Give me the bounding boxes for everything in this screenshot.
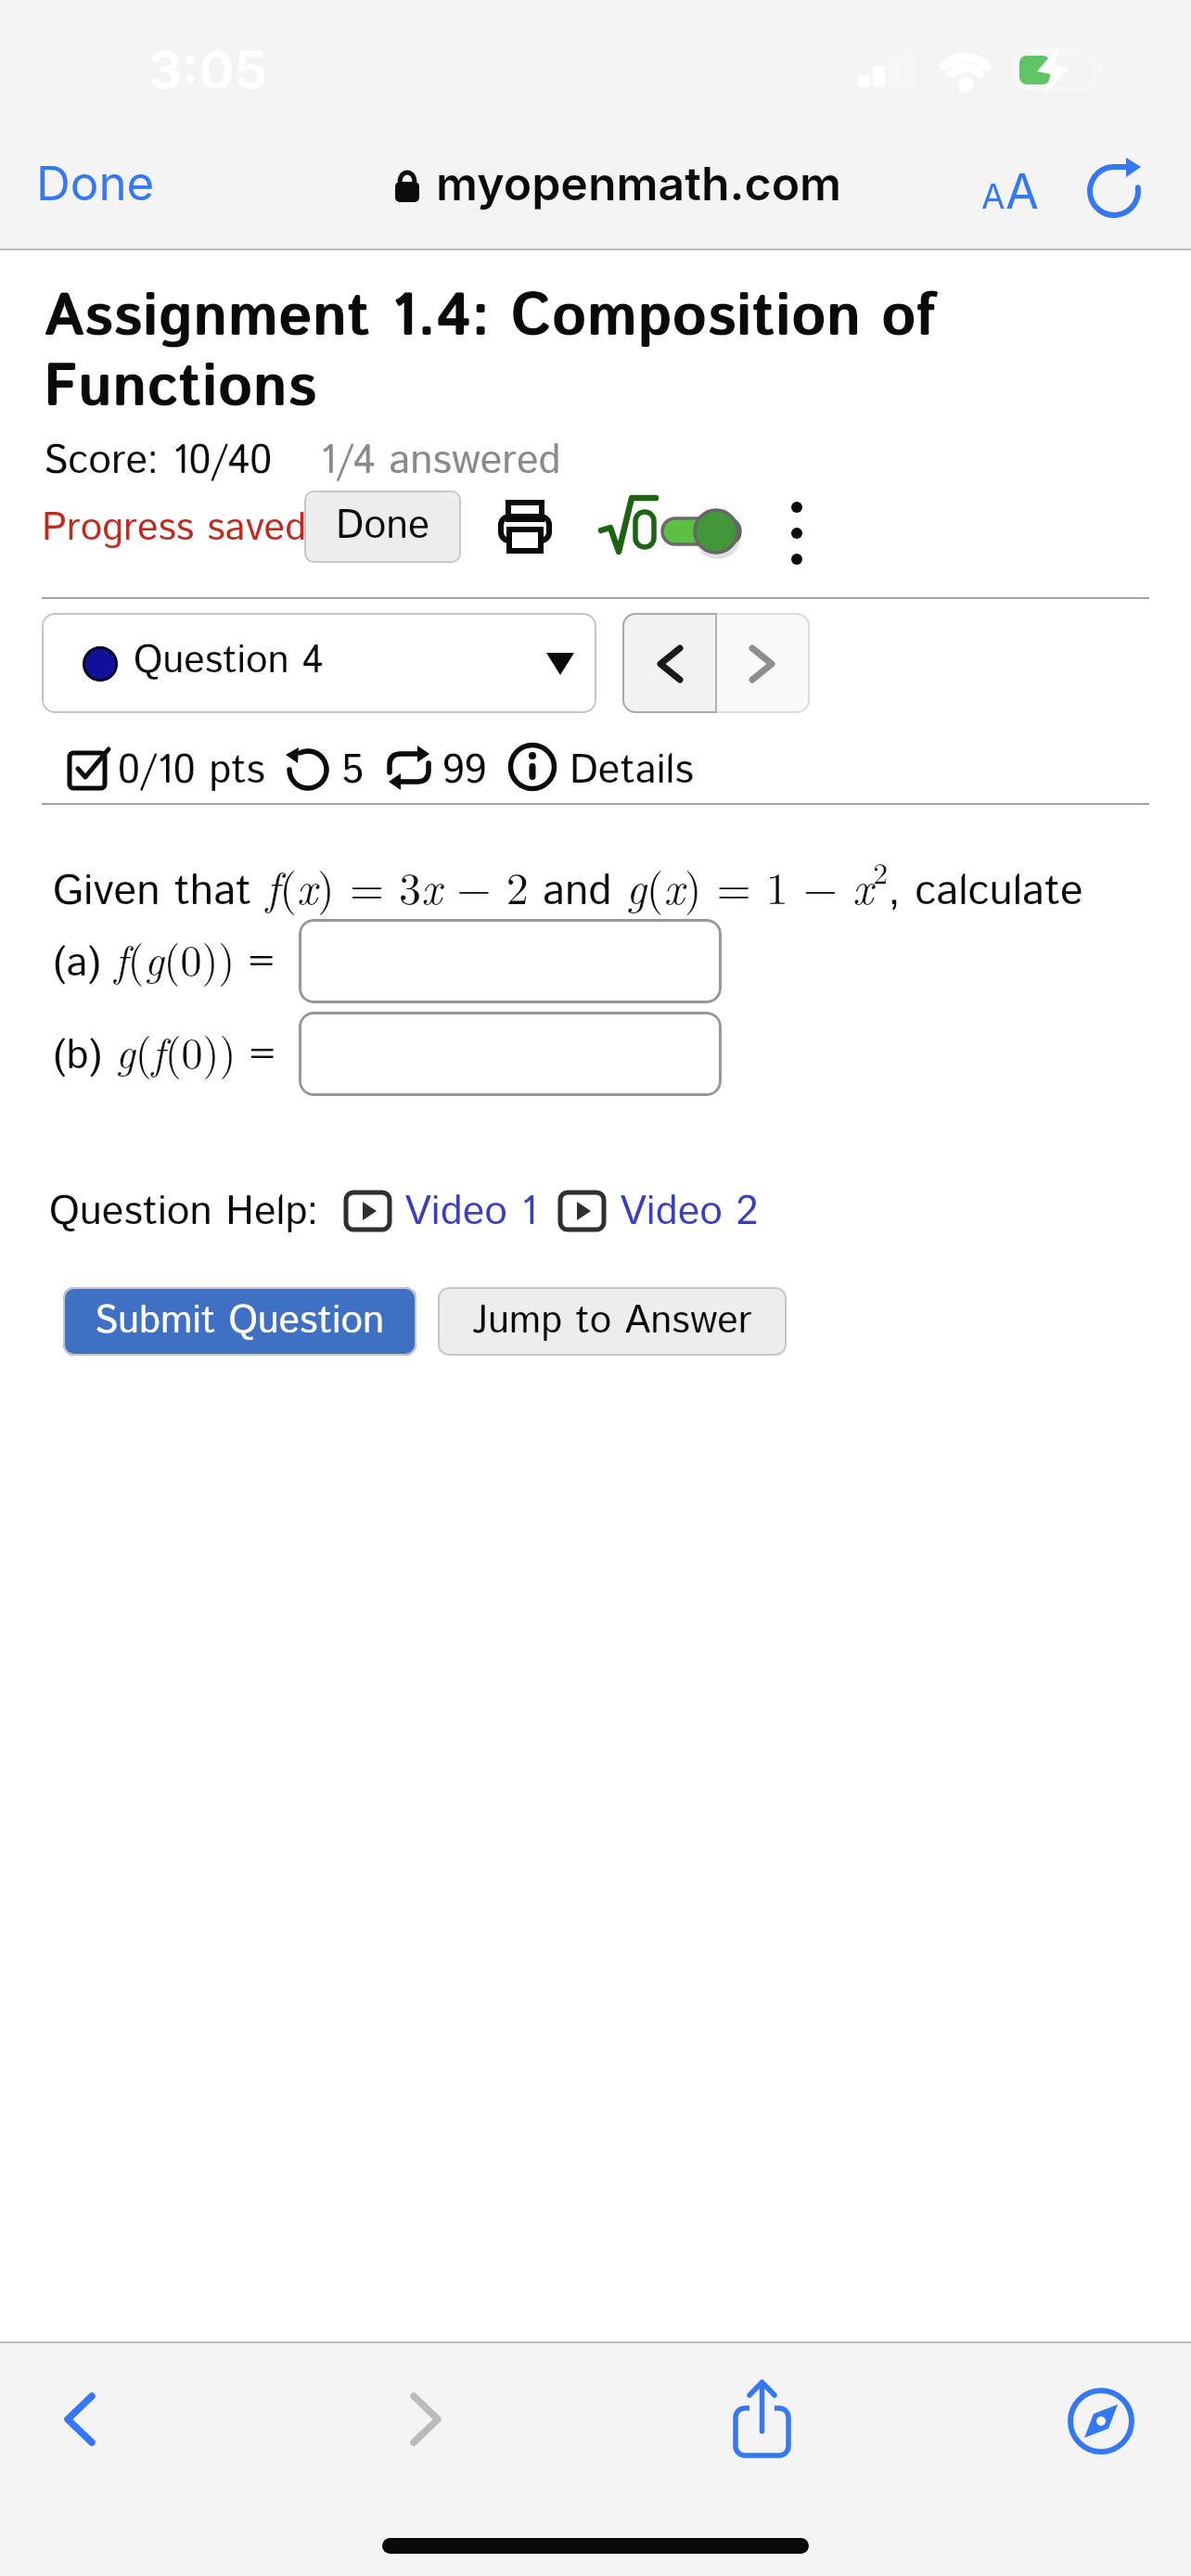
button[interactable] <box>59 2392 100 2446</box>
button[interactable]: Jump to Answer <box>438 1287 787 1356</box>
button[interactable] <box>729 2380 796 2460</box>
staticText: Given that f(x) = 3x − 2 and g(x) = 1 − … <box>53 850 1083 923</box>
staticText: 0/10 pts <box>118 742 265 800</box>
staticText: Jump to Answer <box>472 1294 752 1349</box>
button[interactable] <box>1067 2387 1135 2455</box>
staticText: Video 2 <box>620 1183 759 1228</box>
staticText: 5 <box>341 742 364 800</box>
staticText: (a) f(g(0)) = <box>53 927 275 993</box>
button[interactable] <box>716 613 810 713</box>
staticText: Assignment 1.4: Composition of <box>44 275 937 361</box>
staticText: Done <box>36 155 155 212</box>
button[interactable] <box>788 501 806 566</box>
staticText: Question 4 <box>134 633 324 689</box>
button[interactable] <box>405 2392 446 2446</box>
button[interactable] <box>598 487 747 561</box>
staticText: Details <box>570 742 694 800</box>
button[interactable]: Video 1 <box>346 1192 573 1236</box>
staticText: Video 1 <box>404 1183 538 1228</box>
button[interactable]: Submit Question <box>63 1287 416 1356</box>
staticText: Question Help: <box>49 1183 319 1242</box>
button[interactable]: Done <box>36 155 155 212</box>
staticText: Functions <box>44 346 317 431</box>
staticText: (b) g(f(0)) = <box>53 1020 275 1086</box>
button[interactable] <box>622 613 716 713</box>
button[interactable] <box>299 1012 722 1096</box>
staticText: Submit Question <box>95 1294 385 1349</box>
button[interactable] <box>499 501 551 551</box>
button[interactable] <box>1089 158 1146 217</box>
staticText: Score: 10/40 <box>44 432 273 491</box>
staticText: 99 <box>442 742 487 800</box>
staticText: myopenmath.com <box>436 156 842 211</box>
staticText: 1/4 answered <box>320 432 561 491</box>
button[interactable]: Question 4 <box>42 613 596 713</box>
staticText: Progress saved <box>42 501 307 556</box>
staticText: A <box>1005 162 1039 221</box>
button[interactable]: Done <box>304 491 461 563</box>
staticText: 3:05 <box>148 38 267 102</box>
staticText: A <box>981 175 1005 217</box>
staticText: Done <box>336 498 429 555</box>
button[interactable] <box>299 919 722 1003</box>
button[interactable]: Video 2 <box>560 1192 788 1236</box>
button[interactable]: A <box>981 162 1046 222</box>
